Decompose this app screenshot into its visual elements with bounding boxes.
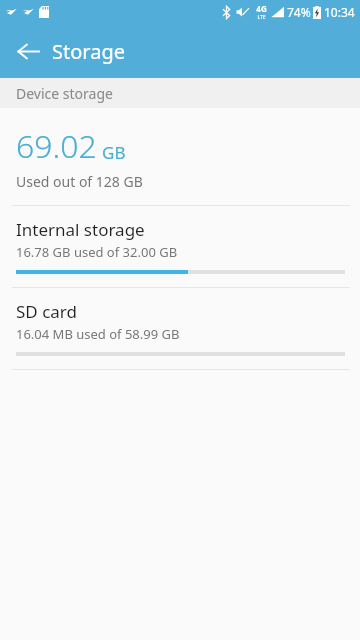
staticText: 16.04 MB used of 58.99 GB bbox=[16, 325, 180, 343]
staticText: GB bbox=[102, 141, 126, 164]
staticText: Used out of 128 GB bbox=[16, 172, 143, 191]
button[interactable]: SD card bbox=[0, 288, 360, 369]
staticText: Internal storage bbox=[16, 218, 145, 241]
staticText: SD card bbox=[16, 300, 77, 323]
staticText: Storage bbox=[52, 38, 125, 65]
staticText: 16.78 GB used of 32.00 GB bbox=[16, 243, 178, 261]
button[interactable]: Internal storage bbox=[0, 206, 360, 287]
staticText: 10:34 bbox=[324, 4, 355, 20]
staticText: 4G bbox=[256, 3, 267, 14]
staticText: 74% bbox=[287, 4, 311, 20]
staticText: 69.02 bbox=[16, 124, 97, 168]
button[interactable]: 69.02 bbox=[0, 108, 360, 205]
button[interactable]: Back bbox=[6, 29, 50, 73]
staticText: LTE bbox=[257, 14, 266, 21]
staticText: Device storage bbox=[16, 84, 113, 103]
